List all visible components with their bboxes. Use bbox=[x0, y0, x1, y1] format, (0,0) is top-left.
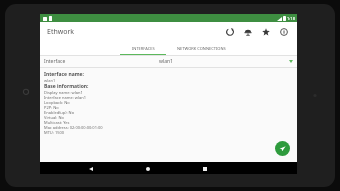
staticText: Display name: wlan1 bbox=[44, 90, 83, 95]
staticText: Enabled(up): No bbox=[44, 110, 75, 115]
staticText: Multicast: Yes bbox=[44, 120, 70, 125]
button[interactable]: Info bbox=[277, 25, 290, 38]
staticText: Ethwork bbox=[47, 27, 75, 37]
button[interactable]: Favorite bbox=[259, 25, 272, 38]
staticText: INTERFACES bbox=[132, 46, 155, 51]
staticText: MTU: 1500 bbox=[44, 130, 65, 135]
button[interactable]: Share bbox=[275, 141, 290, 156]
staticText: wlan1 bbox=[44, 78, 56, 83]
staticText: Virtual: No bbox=[44, 115, 64, 120]
staticText: Loopback: No bbox=[44, 100, 70, 105]
staticText: Mac address: 02:00:00:00:01:00 bbox=[44, 125, 103, 130]
button[interactable]: NETWORK CONNECTIONS bbox=[168, 41, 235, 55]
staticText: wlan1 bbox=[159, 58, 173, 65]
staticText: Interface bbox=[44, 58, 66, 65]
other: Expand bbox=[289, 60, 293, 63]
button[interactable]: INTERFACES bbox=[118, 41, 168, 55]
button[interactable]: Back bbox=[85, 163, 96, 174]
staticText: Interface name: bbox=[44, 71, 84, 78]
staticText: Interface name: wlan1 bbox=[44, 95, 87, 100]
staticText: 1:18 bbox=[287, 16, 295, 21]
staticText: P2P: No bbox=[44, 105, 59, 110]
button[interactable]: Home bbox=[142, 163, 153, 174]
button[interactable]: Theme bbox=[241, 25, 254, 38]
button[interactable]: Recents bbox=[199, 163, 210, 174]
button[interactable]: Interface bbox=[40, 56, 297, 67]
staticText: NETWORK CONNECTIONS bbox=[177, 46, 226, 51]
staticText: Base information: bbox=[44, 83, 89, 90]
button[interactable]: Refresh bbox=[223, 25, 236, 38]
